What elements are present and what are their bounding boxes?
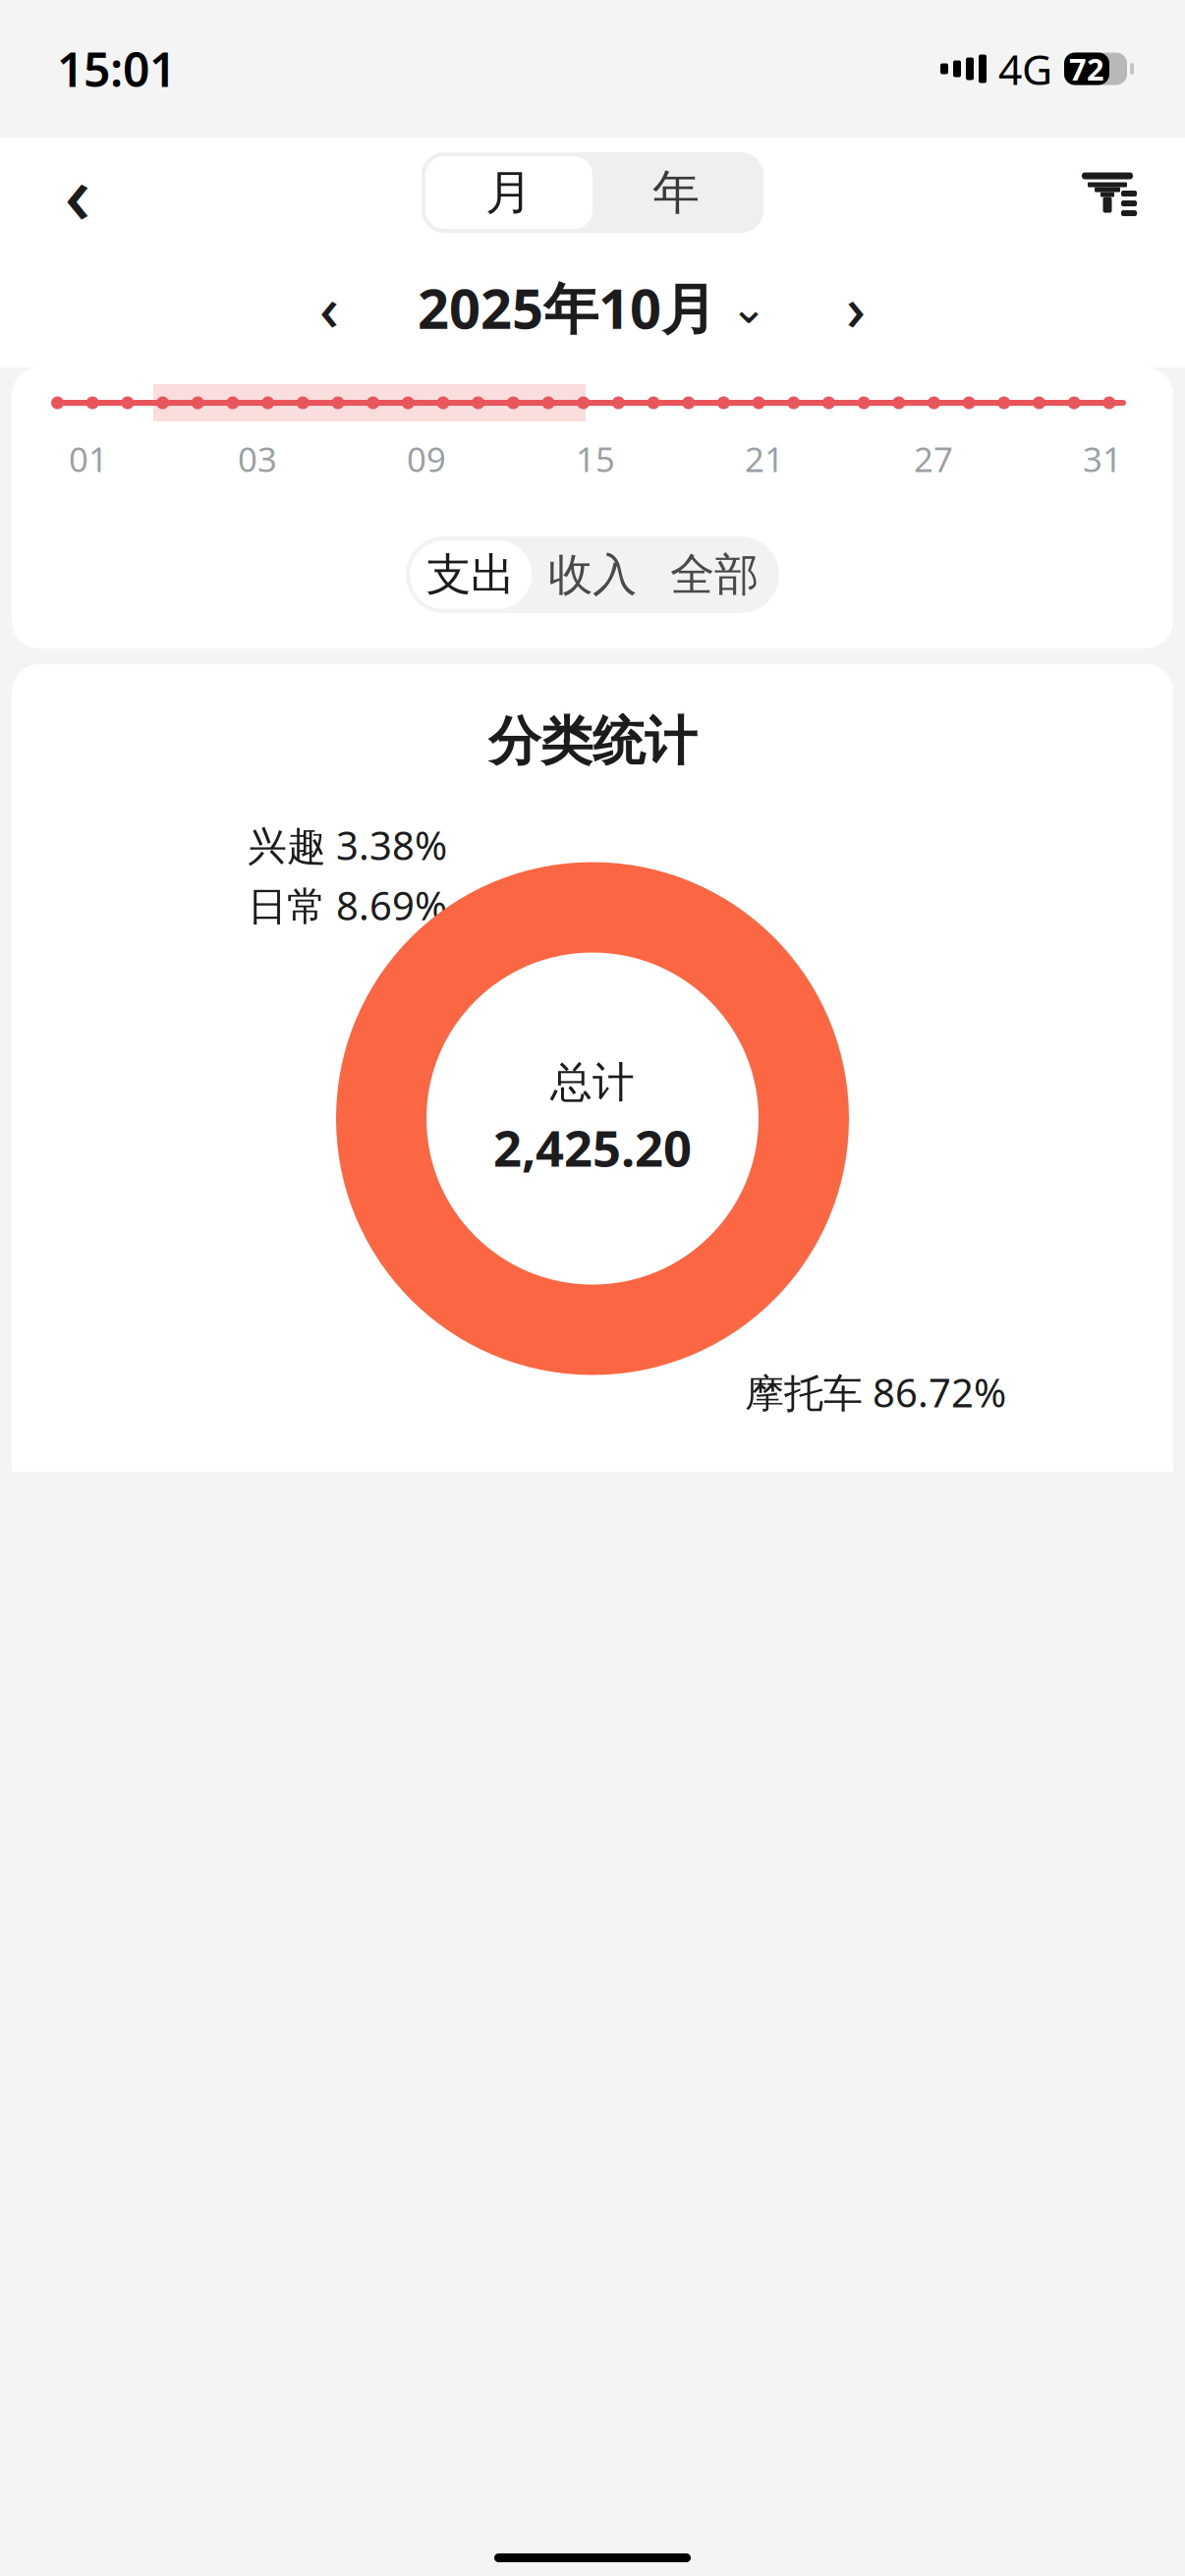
button[interactable]: 返回 bbox=[35, 150, 120, 235]
staticText: 兴趣 3.38% bbox=[248, 819, 447, 871]
button[interactable]: 下个月 bbox=[821, 273, 890, 342]
staticText: 15 bbox=[576, 436, 615, 481]
staticText: 总计 bbox=[550, 1057, 635, 1108]
staticText: 日常 8.69% bbox=[248, 879, 447, 931]
staticText: 03 bbox=[238, 436, 277, 481]
button[interactable]: 2025年10月 bbox=[418, 273, 767, 342]
button[interactable]: 支出 bbox=[410, 540, 532, 609]
staticText: 月 bbox=[485, 164, 533, 222]
staticText: 72 bbox=[1069, 49, 1104, 89]
staticText: 2,425.20 bbox=[493, 1114, 692, 1180]
staticText: 21 bbox=[745, 436, 784, 481]
staticText: › bbox=[846, 268, 866, 347]
staticText: 31 bbox=[1083, 436, 1122, 481]
staticText: 15:01 bbox=[57, 37, 176, 100]
button[interactable]: 全部 bbox=[653, 540, 775, 609]
staticText: 摩托车 86.72% bbox=[745, 1366, 1006, 1418]
staticText: 分类统计 bbox=[488, 709, 697, 774]
staticText: 支出 bbox=[426, 547, 515, 602]
staticText: 2025年10月 bbox=[418, 271, 716, 344]
staticText: 4G bbox=[998, 41, 1052, 97]
staticText: 09 bbox=[407, 436, 446, 481]
staticText: 收入 bbox=[548, 547, 637, 602]
staticText: ‹ bbox=[319, 268, 339, 347]
staticText: 01 bbox=[69, 436, 108, 481]
button[interactable]: 筛选 bbox=[1065, 150, 1150, 235]
button[interactable]: 月 bbox=[425, 156, 592, 229]
button[interactable]: 上个月 bbox=[295, 273, 364, 342]
button[interactable]: 收入 bbox=[532, 540, 653, 609]
staticText: 年 bbox=[652, 164, 700, 222]
staticText: ‹ bbox=[64, 139, 91, 246]
button[interactable]: 年 bbox=[592, 156, 760, 229]
staticText: ⌄ bbox=[730, 282, 767, 333]
staticText: 全部 bbox=[670, 547, 759, 602]
staticText: 27 bbox=[914, 436, 953, 481]
